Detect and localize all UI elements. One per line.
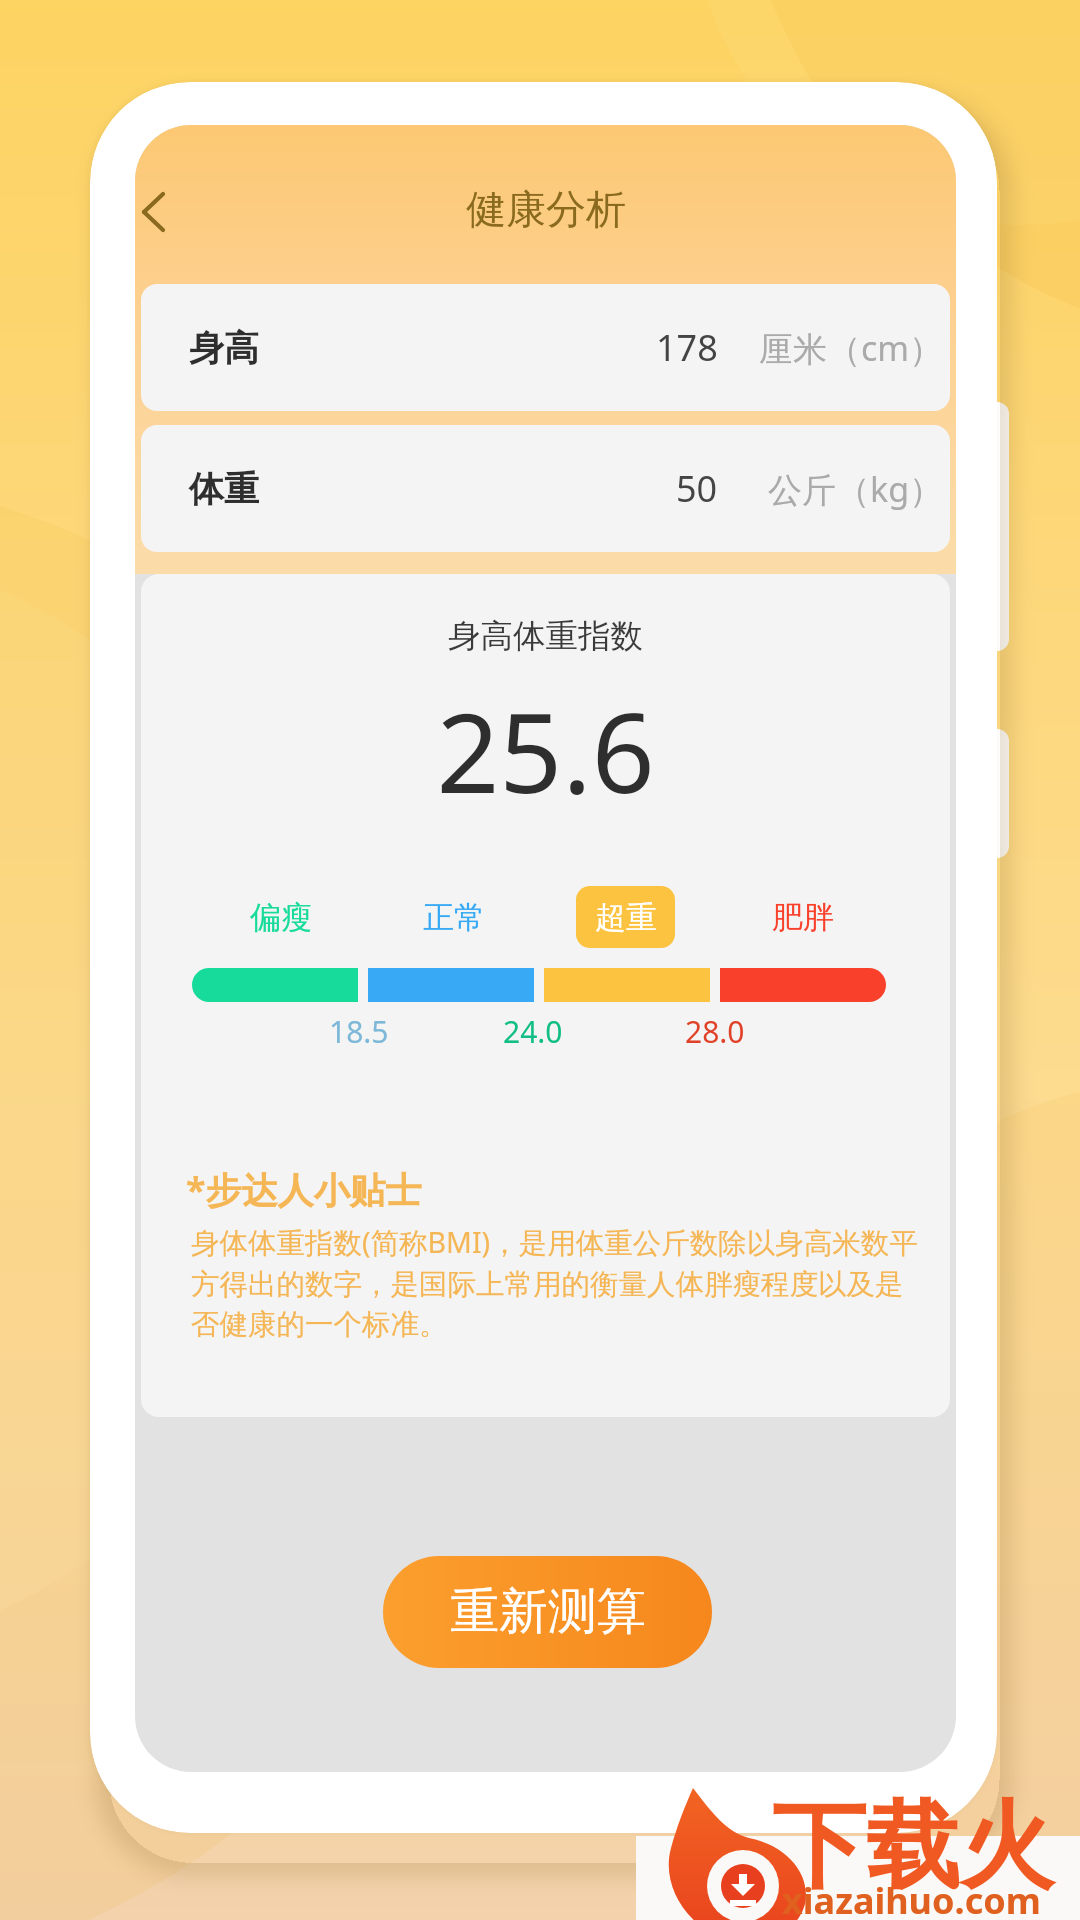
staticText: 正常 (423, 898, 485, 937)
button[interactable]: 正常 (404, 886, 503, 948)
button[interactable]: 身高 (141, 284, 950, 411)
staticText: 体重 (189, 467, 259, 511)
staticText: 健康分析 (466, 184, 626, 234)
staticText: 重新测算 (450, 1581, 646, 1643)
button[interactable]: 偏瘦 (231, 886, 330, 948)
button[interactable]: 超重 (576, 886, 675, 948)
staticText: 超重 (595, 898, 657, 937)
staticText: 50 (676, 464, 718, 513)
button[interactable]: 体重 (141, 425, 950, 552)
button[interactable]: 肥胖 (753, 886, 852, 948)
staticText: 肥胖 (772, 898, 834, 937)
staticText: 厘米（cm） (759, 325, 944, 371)
button[interactable]: Back (135, 176, 184, 248)
staticText: 公斤（kg） (768, 466, 944, 512)
staticText: 偏瘦 (250, 898, 312, 937)
staticText: 18.5 (329, 1011, 389, 1052)
staticText: 身高体重指数 (141, 616, 950, 657)
button[interactable]: 重新测算 (383, 1556, 712, 1668)
staticText: 28.0 (685, 1011, 745, 1052)
staticText: *步达人小贴士 (186, 1165, 422, 1214)
staticText: 24.0 (503, 1011, 563, 1052)
staticText: 下载火 (772, 1787, 1054, 1905)
staticText: 身高 (189, 326, 259, 370)
staticText: xiazaihuo.com (782, 1876, 1041, 1920)
staticText: 25.6 (141, 675, 950, 825)
staticText: 身体体重指数(简称BMI)，是用体重公斤数除以身高米数平方得出的数字，是国际上常… (191, 1223, 931, 1342)
staticText: 178 (656, 323, 718, 372)
